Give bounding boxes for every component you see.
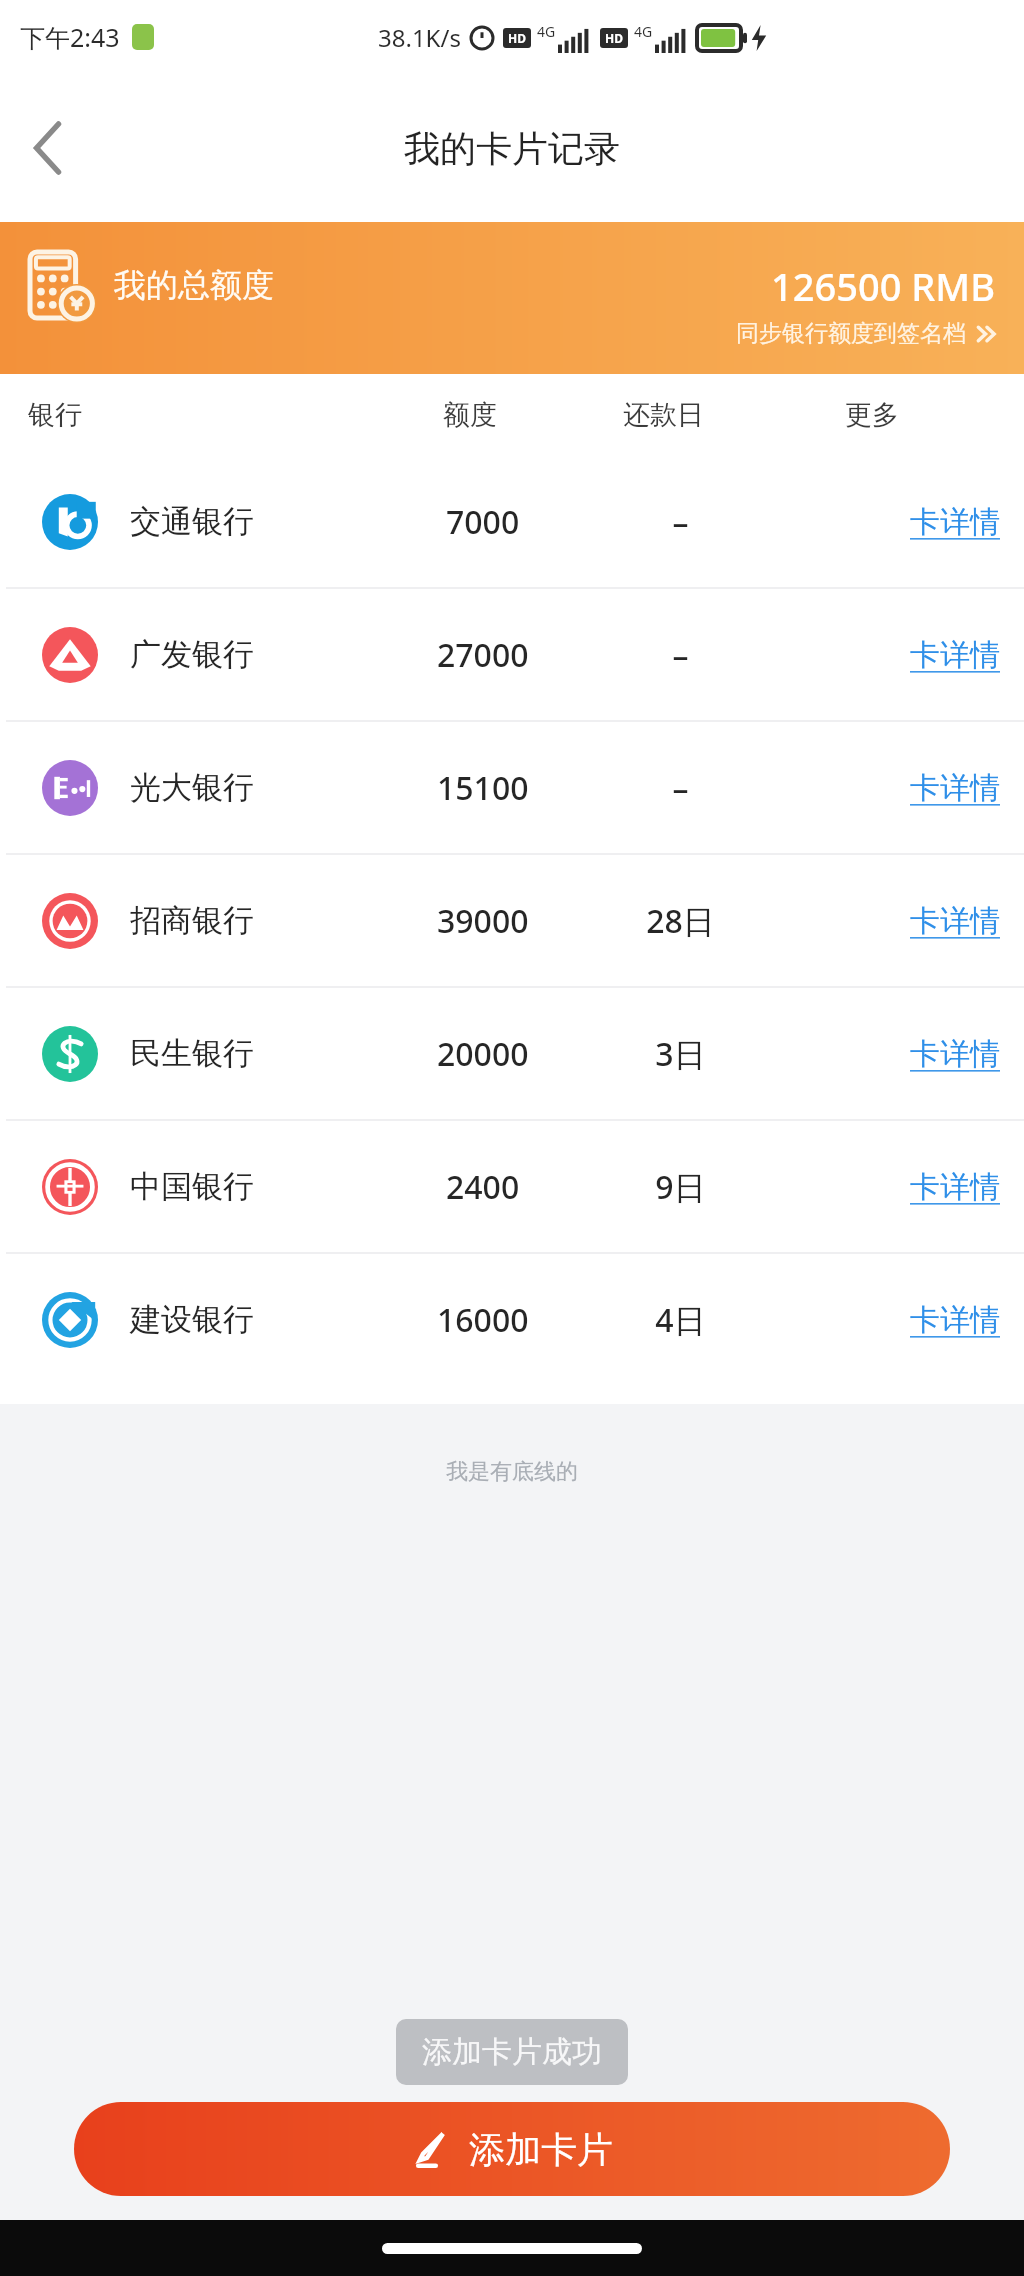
staticText: –	[672, 633, 689, 677]
button[interactable]: 民生银行	[0, 988, 1024, 1119]
staticText: 卡详情	[910, 1168, 1000, 1206]
staticText: 添加卡片	[469, 2127, 613, 2172]
staticText: 额度	[443, 398, 497, 432]
button[interactable]: 交通银行	[0, 456, 1024, 587]
button[interactable]: 卡详情	[910, 722, 1000, 853]
button[interactable]: 添加卡片	[74, 2102, 950, 2196]
staticText: 2400	[446, 1165, 520, 1209]
button[interactable]: 我的总额度	[0, 222, 1024, 374]
staticText: 4G	[537, 22, 556, 41]
staticText: 广发银行	[130, 635, 254, 674]
button[interactable]: 卡详情	[910, 988, 1000, 1119]
button[interactable]: 卡详情	[910, 1121, 1000, 1252]
staticText: 卡详情	[910, 769, 1000, 807]
staticText: 39000	[437, 899, 529, 943]
button[interactable]: 同步银行额度到签名档	[736, 319, 998, 348]
button[interactable]: 卡详情	[910, 456, 1000, 587]
staticText: 招商银行	[130, 901, 254, 940]
staticText: 7000	[446, 500, 520, 544]
button[interactable]: 招商银行	[0, 855, 1024, 986]
staticText: 还款日	[623, 398, 704, 432]
button[interactable]: 广发银行	[0, 589, 1024, 720]
button[interactable]: 卡详情	[910, 855, 1000, 986]
staticText: 光大银行	[130, 768, 254, 807]
staticText: 3日	[655, 1032, 706, 1076]
staticText: 卡详情	[910, 1301, 1000, 1339]
staticText: 建设银行	[130, 1300, 254, 1339]
staticText: 9日	[655, 1165, 706, 1209]
button[interactable]: 中国银行	[0, 1121, 1024, 1252]
staticText: –	[672, 500, 689, 544]
staticText: –	[672, 766, 689, 810]
staticText: 卡详情	[910, 636, 1000, 674]
staticText: 4G	[634, 22, 653, 41]
button[interactable]: 光大银行	[0, 722, 1024, 853]
staticText: 卡详情	[910, 503, 1000, 541]
staticText: 下午2:43	[20, 20, 120, 54]
staticText: 交通银行	[130, 502, 254, 541]
staticText: 银行	[28, 398, 82, 432]
staticText: 我是有底线的	[446, 1458, 578, 1486]
staticText: 卡详情	[910, 902, 1000, 940]
staticText: 20000	[437, 1032, 529, 1076]
button[interactable]: Back	[0, 93, 96, 203]
staticText: 卡详情	[910, 1035, 1000, 1073]
staticText: 4日	[655, 1298, 706, 1342]
staticText: 我的总额度	[114, 265, 274, 305]
staticText: 15100	[437, 766, 529, 810]
staticText: 27000	[437, 633, 529, 677]
staticText: 38.1K/s	[378, 21, 461, 54]
staticText: 16000	[437, 1298, 529, 1342]
button[interactable]: 卡详情	[910, 589, 1000, 720]
staticText: 更多	[845, 398, 899, 432]
staticText: 我的卡片记录	[404, 126, 620, 171]
staticText: 126500 RMB	[771, 260, 996, 312]
staticText: HD	[508, 30, 526, 46]
staticText: 同步银行额度到签名档	[736, 319, 966, 348]
staticText: 添加卡片成功	[422, 2033, 602, 2071]
staticText: HD	[605, 30, 623, 46]
staticText: 28日	[646, 899, 715, 943]
staticText: 民生银行	[130, 1034, 254, 1073]
button[interactable]: 卡详情	[910, 1254, 1000, 1385]
staticText: 中国银行	[130, 1167, 254, 1206]
button[interactable]: 建设银行	[0, 1254, 1024, 1385]
